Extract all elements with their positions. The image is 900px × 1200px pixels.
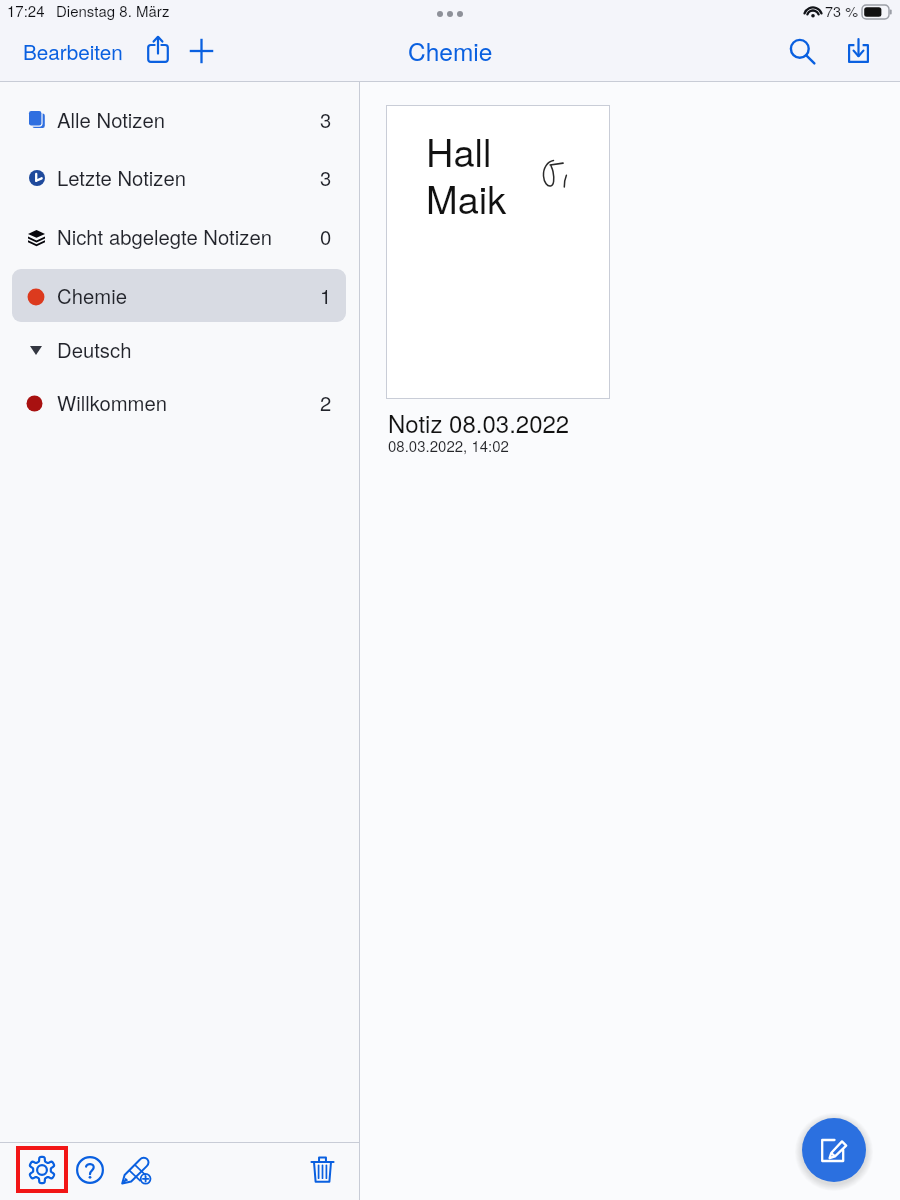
staticText: 3: [320, 105, 332, 134]
staticText: Letzte Notizen: [57, 163, 187, 192]
button[interactable]: Letzte Notizen: [12, 151, 346, 204]
staticText: Maik: [426, 170, 507, 224]
staticText: Chemie: [408, 33, 493, 68]
button[interactable]: Willkommen: [12, 376, 346, 429]
staticText: Notiz 08.03.2022: [388, 405, 570, 439]
button[interactable]: Teilen: [138, 29, 177, 68]
staticText: Nicht abgelegte Notizen: [57, 222, 272, 251]
staticText: 3: [320, 163, 332, 192]
button[interactable]: Importieren: [836, 28, 881, 73]
button[interactable]: Deutsch: [12, 323, 346, 376]
button[interactable]: Suchen: [780, 29, 825, 74]
staticText: Hall: [426, 123, 492, 177]
staticText: 1: [320, 281, 332, 310]
staticText: 17:24: [7, 0, 45, 21]
staticText: Deutsch: [57, 335, 132, 364]
staticText: Alle Notizen: [57, 105, 166, 134]
staticText: 0: [320, 222, 332, 251]
button[interactable]: Nicht abgelegte Notizen: [12, 210, 346, 263]
button[interactable]: Bearbeiten: [16, 33, 130, 69]
button[interactable]: Neue Notiz mit Stift: [114, 1147, 159, 1192]
staticText: 2: [320, 388, 332, 417]
staticText: Bearbeiten: [23, 36, 123, 66]
staticText: 08.03.2022, 14:02: [388, 435, 509, 456]
button[interactable]: Neue Notiz: [802, 1118, 866, 1182]
button[interactable]: Neuer Ordner: [182, 32, 220, 70]
staticText: 73 %: [825, 0, 859, 21]
button[interactable]: Chemie: [12, 269, 346, 322]
staticText: Willkommen: [57, 388, 168, 417]
staticText: Chemie: [57, 281, 127, 310]
staticText: Dienstag 8. März: [56, 0, 170, 21]
button[interactable]: Hall: [386, 105, 610, 399]
button[interactable]: Hilfe: [67, 1147, 112, 1192]
button[interactable]: Einstellungen: [16, 1146, 68, 1193]
button[interactable]: Alle Notizen: [12, 93, 346, 146]
button[interactable]: Löschen: [300, 1147, 344, 1191]
